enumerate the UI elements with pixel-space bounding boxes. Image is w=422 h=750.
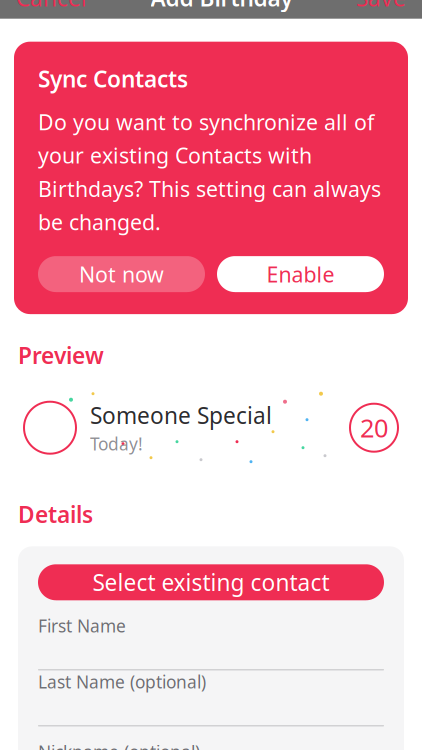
- button[interactable]: Someone Special: [0, 384, 422, 471]
- button[interactable]: Save: [340, 0, 422, 19]
- staticText: Not now: [79, 260, 164, 288]
- staticText: Add Birthday: [150, 0, 292, 13]
- button[interactable]: Not now: [38, 256, 205, 292]
- staticText: Someone Special: [90, 400, 272, 430]
- staticText: Enable: [266, 260, 334, 288]
- staticText: 20: [360, 411, 388, 444]
- staticText: Details: [18, 499, 93, 529]
- staticText: Today!: [90, 432, 143, 455]
- staticText: Last Name (optional): [38, 670, 206, 693]
- staticText: Do you want to synchronize all of your e…: [38, 108, 381, 236]
- staticText: First Name: [38, 614, 126, 637]
- staticText: Nickname (optional): [38, 740, 200, 750]
- button[interactable]: Enable: [217, 256, 384, 292]
- staticText: Cancel: [16, 0, 87, 13]
- button[interactable]: Select existing contact: [38, 564, 384, 600]
- staticText: Select existing contact: [92, 567, 329, 597]
- staticText: Save: [356, 0, 406, 13]
- staticText: Preview: [18, 340, 104, 370]
- staticText: Sync Contacts: [38, 64, 188, 94]
- button[interactable]: Cancel: [0, 0, 103, 19]
